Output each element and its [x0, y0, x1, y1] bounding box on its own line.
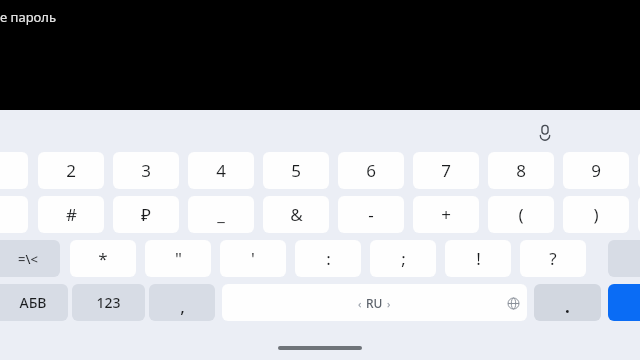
button[interactable]: _ — [188, 196, 254, 233]
staticText: ( — [518, 203, 524, 226]
button[interactable] — [638, 152, 640, 189]
button[interactable]: ( — [488, 196, 554, 233]
button[interactable]: ! — [445, 240, 511, 277]
staticText: & — [290, 203, 303, 226]
button[interactable]: . — [534, 284, 601, 321]
staticText: , — [180, 295, 185, 318]
button[interactable]: 8 — [488, 152, 554, 189]
button[interactable]: * — [70, 240, 136, 277]
button[interactable]: Voice input — [528, 118, 562, 148]
staticText: 6 — [366, 159, 376, 182]
button[interactable]: 2 — [38, 152, 104, 189]
staticText: ' — [251, 247, 255, 270]
button[interactable]: 3 — [113, 152, 179, 189]
button[interactable] — [638, 196, 640, 233]
staticText: . — [565, 295, 570, 318]
staticText: RU — [366, 295, 383, 311]
button[interactable]: 7 — [413, 152, 479, 189]
button[interactable]: 6 — [338, 152, 404, 189]
button[interactable]: ' — [220, 240, 286, 277]
button[interactable]: ) — [563, 196, 629, 233]
button[interactable]: - — [338, 196, 404, 233]
button[interactable]: ? — [520, 240, 586, 277]
staticText: * — [98, 247, 108, 270]
button[interactable]: Change keyboard language — [506, 296, 520, 310]
staticText: 9 — [591, 159, 601, 182]
staticText: 2 — [66, 159, 76, 182]
staticText: 5 — [291, 159, 301, 182]
staticText: # — [66, 203, 77, 226]
staticText: ‹ — [358, 296, 362, 311]
staticText: 7 — [441, 159, 451, 182]
staticText: " — [175, 247, 182, 270]
button[interactable]: , — [149, 284, 215, 321]
staticText: ) — [593, 203, 599, 226]
button[interactable]: 5 — [263, 152, 329, 189]
button[interactable]: ‹ — [222, 284, 527, 321]
button[interactable]: 123 — [72, 284, 145, 321]
staticText: ? — [549, 247, 557, 270]
button[interactable]: ₽ — [113, 196, 179, 233]
button[interactable]: # — [38, 196, 104, 233]
staticText: 123 — [96, 293, 121, 312]
button[interactable]: : — [295, 240, 361, 277]
button[interactable]: =\< — [0, 240, 60, 277]
staticText: =\< — [18, 250, 38, 268]
staticText: ₽ — [141, 203, 151, 226]
staticText: ! — [476, 247, 481, 270]
staticText: 8 — [516, 159, 526, 182]
button[interactable]: ; — [370, 240, 436, 277]
staticText: _ — [217, 203, 225, 226]
staticText: : — [326, 247, 331, 270]
staticText: › — [387, 296, 391, 311]
staticText: + — [441, 203, 451, 226]
staticText: е пароль — [0, 8, 56, 26]
button[interactable]: 9 — [563, 152, 629, 189]
staticText: ; — [401, 247, 406, 270]
button[interactable]: " — [145, 240, 211, 277]
button[interactable]: & — [263, 196, 329, 233]
staticText: 4 — [216, 159, 226, 182]
staticText: 3 — [141, 159, 151, 182]
button[interactable]: + — [413, 196, 479, 233]
staticText: - — [368, 203, 374, 226]
button[interactable]: АБВ — [0, 284, 68, 321]
staticText: АБВ — [19, 293, 47, 312]
button[interactable]: Enter — [608, 284, 640, 321]
button[interactable]: 4 — [188, 152, 254, 189]
